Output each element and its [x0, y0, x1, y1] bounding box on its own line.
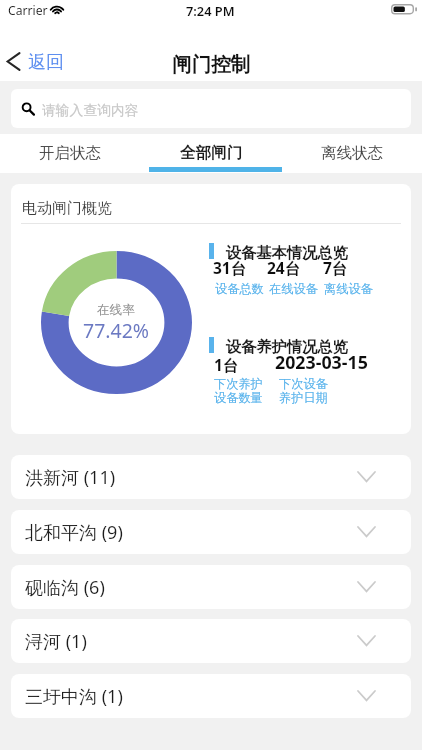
- other: Expand: [357, 526, 376, 538]
- staticText: 北和平沟 (9): [25, 520, 123, 545]
- button[interactable]: 洪新河 (11): [11, 455, 411, 499]
- staticText: 2023-03-15: [275, 350, 368, 374]
- staticText: 在线率: [97, 302, 135, 318]
- staticText: 砚临沟 (6): [25, 575, 105, 600]
- button[interactable]: Search: [11, 89, 411, 128]
- staticText: 下次设备: [279, 376, 328, 391]
- other: Expand: [357, 635, 376, 647]
- staticText: 24台: [267, 257, 301, 278]
- staticText: 浔河 (1): [25, 629, 87, 654]
- staticText: 洪新河 (11): [25, 465, 116, 490]
- staticText: 闸门控制: [172, 52, 250, 77]
- staticText: 设备基本情况总览: [226, 243, 348, 262]
- staticText: 设备养护情况总览: [226, 337, 348, 356]
- other: Search: [21, 102, 37, 118]
- staticText: 设备总数: [215, 281, 264, 296]
- other: Expand: [357, 690, 376, 702]
- button[interactable]: 浔河 (1): [11, 619, 411, 663]
- button[interactable]: 开启状态: [0, 134, 140, 173]
- button[interactable]: 北和平沟 (9): [11, 510, 411, 554]
- staticText: 离线设备: [324, 281, 373, 296]
- staticText: 全部闸门: [180, 143, 242, 163]
- staticText: 请输入查询内容: [42, 102, 139, 119]
- other: Expand: [357, 581, 376, 593]
- staticText: 养护日期: [279, 390, 328, 405]
- staticText: 1台: [214, 354, 239, 375]
- button[interactable]: 三圩中沟 (1): [11, 674, 411, 718]
- staticText: 在线设备: [269, 281, 318, 296]
- staticText: 返回: [28, 51, 64, 74]
- staticText: 设备数量: [214, 390, 263, 405]
- other: Expand: [357, 471, 376, 483]
- staticText: 77.42%: [83, 317, 150, 344]
- staticText: 7:24 PM: [186, 2, 235, 19]
- staticText: 离线状态: [321, 143, 383, 163]
- button[interactable]: 全部闸门: [140, 134, 281, 173]
- button[interactable]: 离线状态: [281, 134, 422, 173]
- button[interactable]: 返回: [0, 48, 70, 79]
- staticText: 三圩中沟 (1): [25, 684, 123, 709]
- staticText: 7台: [323, 257, 348, 278]
- staticText: 电动闸门概览: [22, 199, 112, 218]
- button[interactable]: 砚临沟 (6): [11, 565, 411, 609]
- staticText: 31台: [213, 257, 247, 278]
- staticText: 开启状态: [39, 143, 101, 163]
- staticText: 下次养护: [214, 376, 263, 391]
- staticText: Carrier: [8, 2, 48, 19]
